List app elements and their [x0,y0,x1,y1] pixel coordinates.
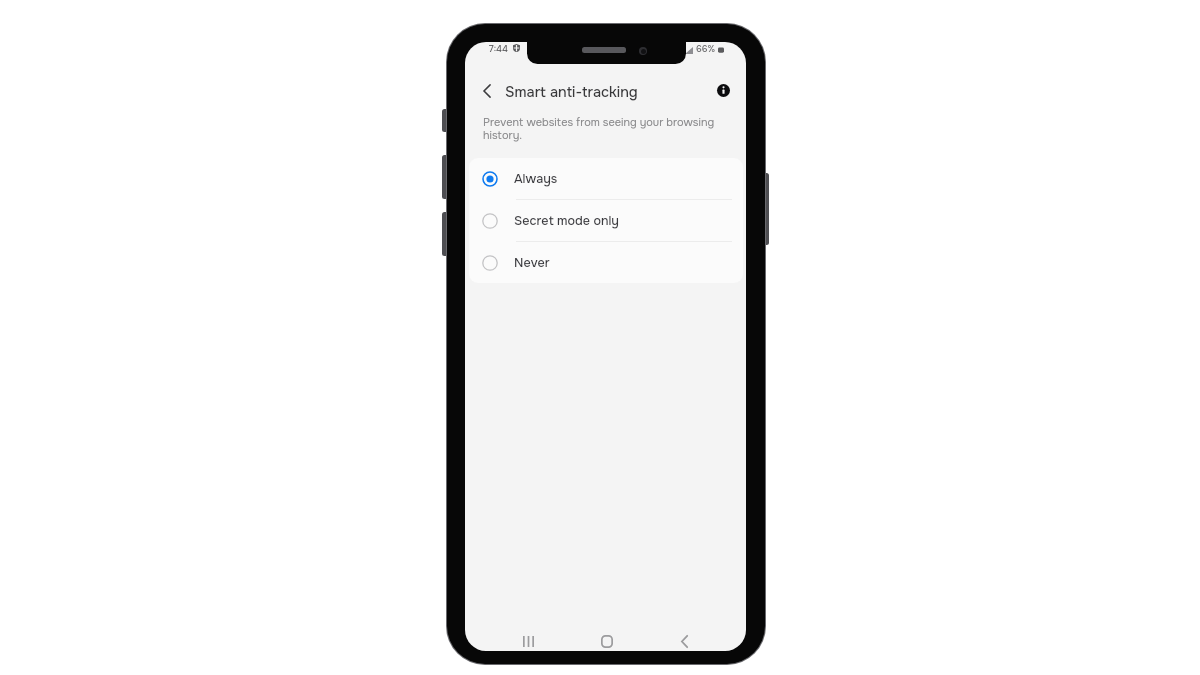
button[interactable]: Navigate up [476,80,498,102]
button[interactable]: Always [469,158,743,200]
staticText: Never [514,255,550,271]
staticText: 66% [696,43,716,55]
button[interactable]: Never [469,242,743,283]
button[interactable]: Recent apps [506,619,550,651]
button[interactable]: Information [712,79,734,101]
button[interactable]: Back [662,619,706,651]
button[interactable]: Secret mode only [469,200,743,242]
staticText: Smart anti-tracking [505,83,638,101]
staticText: Secret mode only [514,213,619,229]
staticText: Prevent websites from seeing your browsi… [483,115,715,143]
staticText: Always [514,171,558,187]
button[interactable]: Home [585,619,629,651]
staticText: 7:44 [489,43,508,55]
